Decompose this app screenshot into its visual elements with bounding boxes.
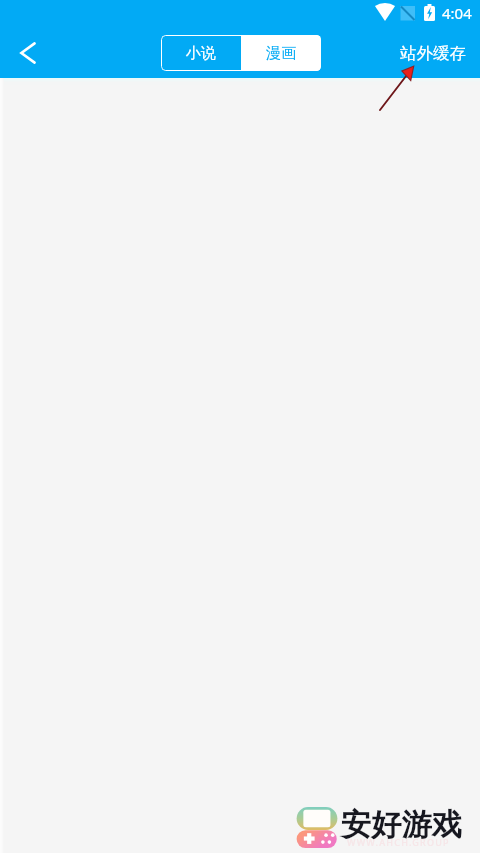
- staticText: 4:04: [442, 3, 472, 23]
- staticText: 站外缓存: [400, 43, 466, 64]
- button[interactable]: 小说: [161, 35, 241, 71]
- staticText: 漫画: [266, 44, 296, 63]
- button[interactable]: Back: [0, 28, 52, 78]
- staticText: 安好游戏: [341, 806, 462, 844]
- staticText: WWW.AHCH.GROUP: [347, 836, 450, 848]
- button[interactable]: 漫画: [241, 35, 321, 71]
- staticText: 小说: [186, 44, 216, 63]
- button[interactable]: 站外缓存: [400, 28, 466, 78]
